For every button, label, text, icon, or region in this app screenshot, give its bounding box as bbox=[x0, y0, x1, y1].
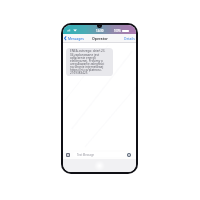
button[interactable]: Details bbox=[121, 35, 136, 42]
button[interactable]: Text Message bbox=[73, 152, 125, 157]
button[interactable]: Messages bbox=[63, 35, 86, 42]
staticText: 14:30 bbox=[96, 29, 104, 33]
staticText: 100% bbox=[114, 29, 121, 33]
staticText: Text Message bbox=[77, 153, 95, 157]
staticText: Messages bbox=[68, 36, 84, 41]
button[interactable]: ENEA-ostrzega: dzień 23. 04 zaplanowane … bbox=[66, 48, 113, 76]
staticText: Operator bbox=[92, 36, 108, 41]
button[interactable]: Camera bbox=[66, 153, 70, 157]
button[interactable]: Send bbox=[127, 153, 131, 157]
staticText: ENEA-ostrzega: dzień 23. 04 zaplanowane … bbox=[70, 49, 106, 74]
